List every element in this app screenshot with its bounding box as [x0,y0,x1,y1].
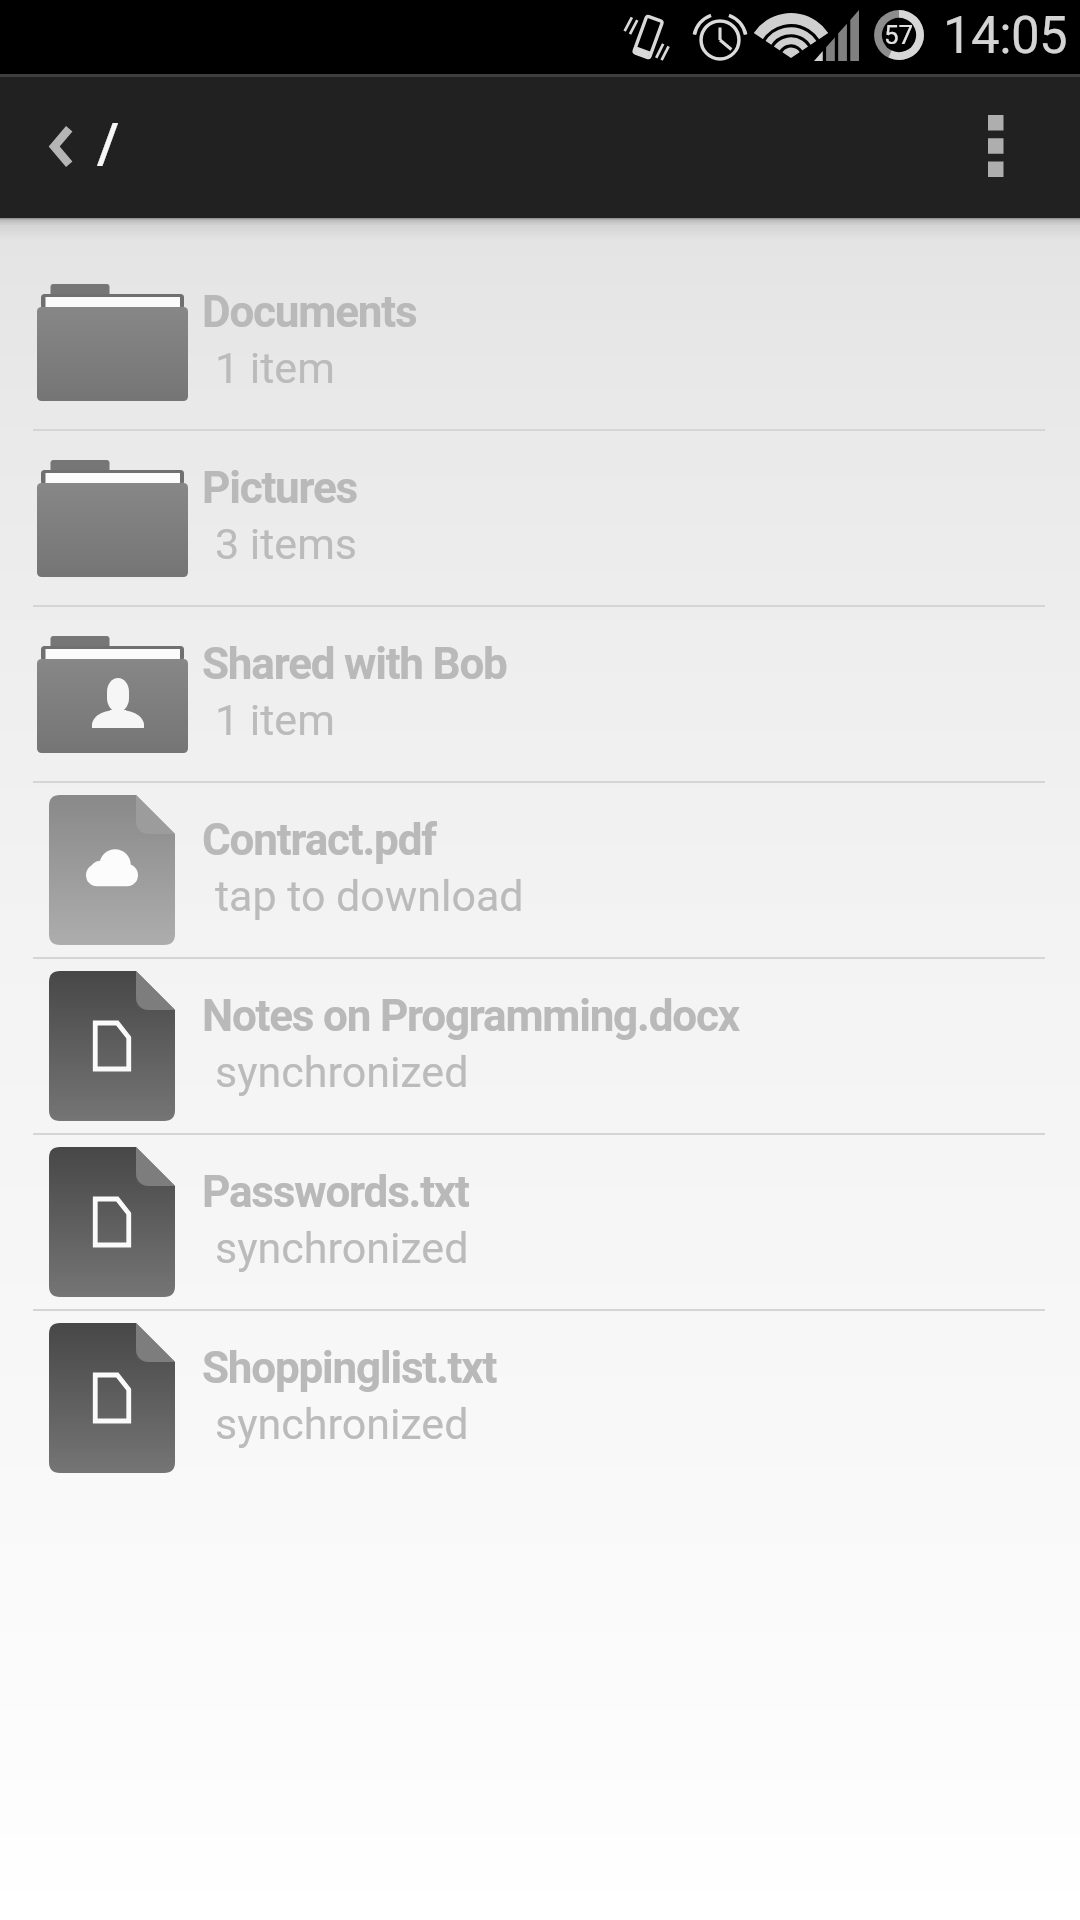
button[interactable]: Contract.pdf [0,783,1080,957]
button[interactable]: Back [11,86,111,206]
staticText: synchronized [215,1223,469,1273]
button[interactable]: Notes on Programming.docx [0,959,1080,1133]
staticText: 14:05 [943,6,1068,66]
staticText: 1 item [215,343,335,393]
button[interactable]: Shoppinglist.txt [0,1311,1080,1485]
button[interactable]: Documents [0,255,1080,429]
staticText: 1 item [215,695,335,745]
staticText: Shared with Bob [202,638,507,690]
staticText: Contract.pdf [202,814,436,866]
staticText: Passwords.txt [202,1166,469,1218]
button[interactable]: More options [912,74,1080,218]
staticText: tap to download [215,871,524,921]
staticText: synchronized [215,1399,469,1449]
staticText: / [97,111,120,177]
staticText: Documents [202,286,417,338]
staticText: Pictures [202,462,358,514]
staticText: Notes on Programming.docx [202,990,739,1042]
button[interactable]: Shared with Bob [0,607,1080,781]
staticText: 57 [884,20,914,50]
button[interactable]: Passwords.txt [0,1135,1080,1309]
button[interactable]: Pictures [0,431,1080,605]
staticText: 3 items [215,519,358,569]
staticText: synchronized [215,1047,469,1097]
staticText: Shoppinglist.txt [202,1342,497,1394]
